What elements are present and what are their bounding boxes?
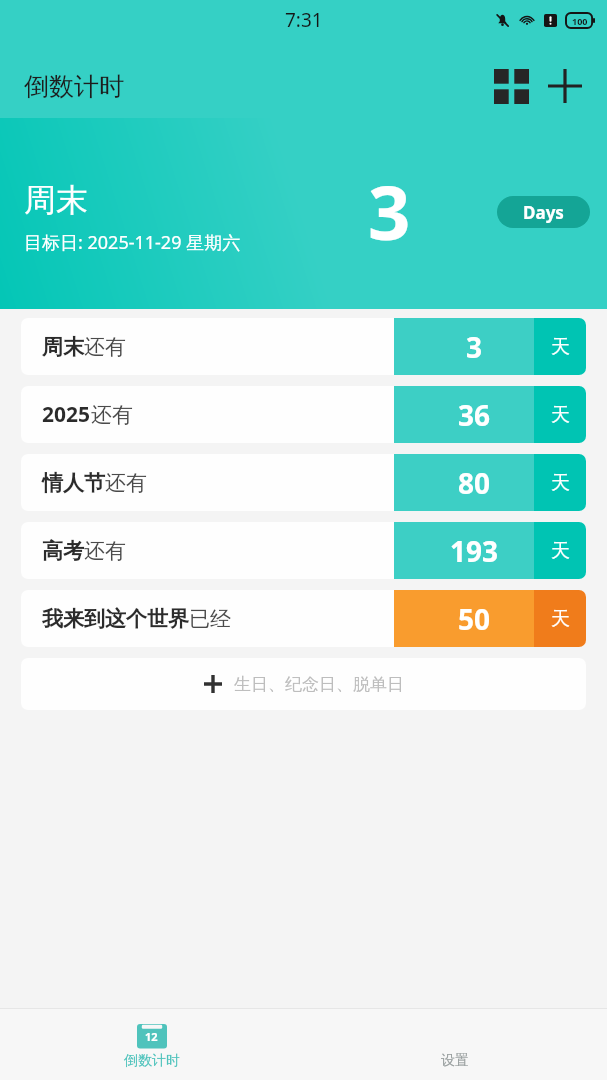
button[interactable]: 情人节 [21, 454, 586, 511]
staticText: 天 [551, 335, 570, 359]
staticText: 还有 [105, 470, 147, 496]
button[interactable]: 2025 [21, 386, 586, 443]
staticText: 还有 [84, 334, 126, 360]
staticText: 周末 [24, 180, 88, 220]
staticText: 高考 [42, 538, 84, 564]
staticText: 3 [368, 161, 411, 262]
button[interactable]: 周末 [21, 318, 586, 375]
staticText: 100 [572, 15, 588, 27]
button[interactable]: 倒数计时 [0, 1009, 303, 1080]
button[interactable]: Grid view [485, 60, 537, 112]
staticText: 设置 [441, 1052, 469, 1070]
staticText: 我来到这个世界 [42, 606, 189, 632]
button[interactable]: Add countdown [537, 58, 593, 114]
staticText: 倒数计时 [24, 71, 124, 102]
staticText: 周末 [42, 334, 84, 360]
staticText: 天 [551, 403, 570, 427]
staticText: 倒数计时 [124, 1052, 180, 1070]
staticText: 情人节 [42, 470, 105, 496]
staticText: 2025 [42, 400, 91, 429]
staticText: 还有 [91, 402, 133, 428]
staticText: 3 [466, 328, 483, 366]
staticText: 12 [145, 1029, 158, 1044]
staticText: 天 [551, 607, 570, 631]
button[interactable]: 设置 [303, 1009, 607, 1080]
staticText: 7:31 [285, 7, 323, 33]
staticText: 天 [551, 539, 570, 563]
staticText: 目标日: 2025-11-29 星期六 [24, 230, 241, 255]
button[interactable]: 高考 [21, 522, 586, 579]
staticText: Days [523, 201, 564, 224]
staticText: 已经 [189, 606, 231, 632]
staticText: 50 [458, 600, 491, 638]
staticText: 80 [458, 464, 491, 502]
button[interactable]: 我来到这个世界 [21, 590, 586, 647]
staticText: 天 [551, 471, 570, 495]
button[interactable]: 生日、纪念日、脱单日 [21, 658, 586, 710]
staticText: 193 [450, 532, 499, 570]
staticText: 生日、纪念日、脱单日 [234, 674, 404, 695]
staticText: 36 [458, 396, 491, 434]
button[interactable]: 周末 [0, 118, 607, 309]
staticText: 还有 [84, 538, 126, 564]
